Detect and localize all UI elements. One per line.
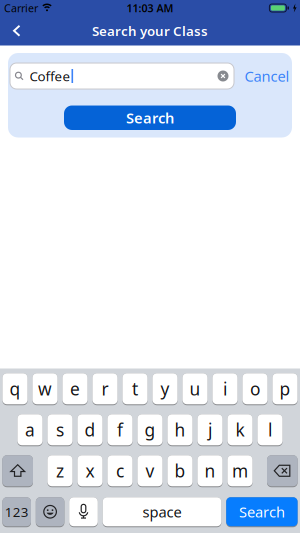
button[interactable]: t (122, 373, 148, 405)
staticText: h (174, 418, 185, 441)
staticText: y (160, 377, 169, 400)
button[interactable]: f (107, 414, 133, 446)
button[interactable]: e (62, 373, 88, 405)
button[interactable]: a (17, 414, 43, 446)
staticText: g (144, 418, 155, 441)
staticText: t (132, 377, 138, 400)
button[interactable]: Cancel (234, 66, 289, 86)
staticText: f (117, 418, 123, 441)
button[interactable]: Search (64, 105, 236, 130)
button[interactable]: y (152, 373, 178, 405)
staticText: u (189, 377, 200, 400)
staticText: q (9, 377, 20, 400)
button[interactable]: x (77, 455, 103, 487)
button[interactable]: Delete (267, 455, 298, 487)
button[interactable]: d (77, 414, 103, 446)
staticText: z (56, 459, 64, 482)
staticText: d (84, 418, 95, 441)
staticText: space (142, 502, 181, 521)
staticText: i (223, 377, 227, 400)
button[interactable]: l (257, 414, 283, 446)
button[interactable]: Numbers (2, 497, 31, 527)
button[interactable]: r (92, 373, 118, 405)
button[interactable]: s (47, 414, 73, 446)
staticText: p (279, 377, 290, 400)
staticText: j (208, 418, 212, 441)
button[interactable]: i (212, 373, 238, 405)
button[interactable]: q (2, 373, 28, 405)
button[interactable]: Search (226, 497, 298, 527)
button[interactable]: Emoji (36, 497, 64, 527)
staticText: Coffee (29, 67, 70, 85)
button[interactable]: g (137, 414, 163, 446)
button[interactable]: m (227, 455, 253, 487)
staticText: k (235, 418, 244, 441)
button[interactable]: z (47, 455, 73, 487)
button[interactable]: b (167, 455, 193, 487)
staticText: w (38, 377, 52, 400)
staticText: n (204, 459, 215, 482)
staticText: x (85, 459, 94, 482)
button[interactable]: w (32, 373, 58, 405)
button[interactable]: p (272, 373, 298, 405)
button[interactable]: k (227, 414, 253, 446)
button[interactable]: Dictate (69, 497, 98, 527)
staticText: l (268, 418, 272, 441)
button[interactable]: Back (0, 16, 21, 45)
staticText: o (250, 377, 260, 400)
button[interactable]: u (182, 373, 208, 405)
staticText: Carrier (4, 1, 38, 15)
staticText: Search (126, 108, 174, 127)
button[interactable]: v (137, 455, 163, 487)
button[interactable]: h (167, 414, 193, 446)
staticText: c (116, 459, 124, 482)
button[interactable]: Space (103, 497, 221, 527)
staticText: 11:03 AM (126, 1, 173, 15)
staticText: r (101, 377, 108, 400)
staticText: m (232, 459, 248, 482)
button[interactable]: c (107, 455, 133, 487)
staticText: e (70, 377, 80, 400)
staticText: s (56, 418, 64, 441)
staticText: v (145, 459, 154, 482)
staticText: Search (239, 502, 285, 521)
staticText: a (25, 418, 35, 441)
button[interactable]: n (197, 455, 223, 487)
button[interactable]: j (197, 414, 223, 446)
staticText: b (174, 459, 185, 482)
staticText: Cancel (244, 66, 289, 86)
staticText: 123 (5, 503, 29, 521)
button[interactable]: o (242, 373, 268, 405)
button[interactable]: Clear text (217, 70, 234, 81)
button[interactable]: Shift (2, 455, 33, 487)
staticText: Search your Class (92, 22, 208, 40)
